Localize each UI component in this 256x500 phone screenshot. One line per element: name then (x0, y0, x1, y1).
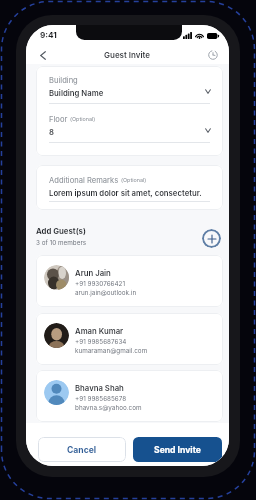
button[interactable]: Floor (36, 105, 223, 144)
staticText: +91 9930766421 (75, 280, 126, 288)
button[interactable]: Back (35, 47, 51, 63)
staticText: Lorem ipsum dolor sit amet, consectetur. (49, 188, 202, 197)
staticText: arun.jain@outlook.in (75, 289, 137, 297)
staticText: Bhavna Shah (75, 383, 124, 392)
staticText: 8 (49, 127, 54, 136)
staticText: Arun Jain (75, 268, 111, 277)
staticText: +91 9985687634 (75, 338, 127, 346)
button[interactable]: Add guest (202, 229, 221, 248)
staticText: Cancel (67, 445, 97, 455)
staticText: Building (49, 76, 78, 85)
staticText: (Optional) (121, 177, 147, 184)
button[interactable]: Arun Jain (36, 255, 223, 307)
button[interactable]: Bhavna Shah (36, 370, 223, 422)
staticText: (Optional) (70, 116, 96, 123)
staticText: Floor (49, 115, 68, 124)
button[interactable]: Building (36, 66, 223, 105)
staticText: 9:41 (40, 30, 57, 40)
button[interactable]: Additional Remarks (36, 165, 223, 210)
staticText: +91 9985685678 (75, 395, 127, 403)
staticText: Building Name (49, 88, 104, 97)
button[interactable]: Aman Kumar (36, 313, 223, 365)
staticText: Additional Remarks (49, 176, 119, 185)
staticText: 3 of 10 members (36, 239, 87, 247)
staticText: Guest Invite (104, 50, 151, 60)
button[interactable]: History (205, 47, 221, 63)
button[interactable]: Cancel (38, 437, 126, 462)
staticText: Send Invite (154, 445, 201, 455)
staticText: kumaraman@gmail.com (75, 347, 148, 355)
staticText: bhavna.s@yahoo.com (75, 404, 142, 412)
staticText: Add Guest(s) (36, 226, 86, 235)
button[interactable]: Send Invite (133, 437, 222, 462)
staticText: Aman Kumar (75, 326, 124, 335)
